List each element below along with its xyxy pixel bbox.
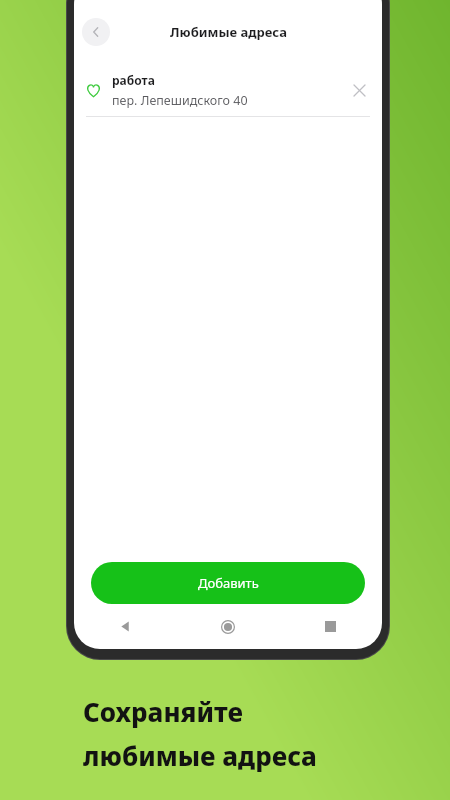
staticText: работа <box>112 72 155 88</box>
button[interactable]: Home <box>176 604 279 649</box>
button[interactable]: Добавить <box>91 562 365 604</box>
button[interactable]: Recents <box>279 604 382 649</box>
staticText: Добавить <box>198 574 259 592</box>
button[interactable]: Назад <box>82 18 110 46</box>
staticText: любимые адреса <box>83 738 317 773</box>
button[interactable]: работа <box>74 64 382 116</box>
button[interactable]: Back <box>74 604 176 649</box>
staticText: Сохраняйте <box>83 694 243 729</box>
staticText: Любимые адреса <box>170 23 287 41</box>
staticText: пер. Лепешидского 40 <box>112 92 248 109</box>
button[interactable]: Удалить <box>346 77 372 103</box>
